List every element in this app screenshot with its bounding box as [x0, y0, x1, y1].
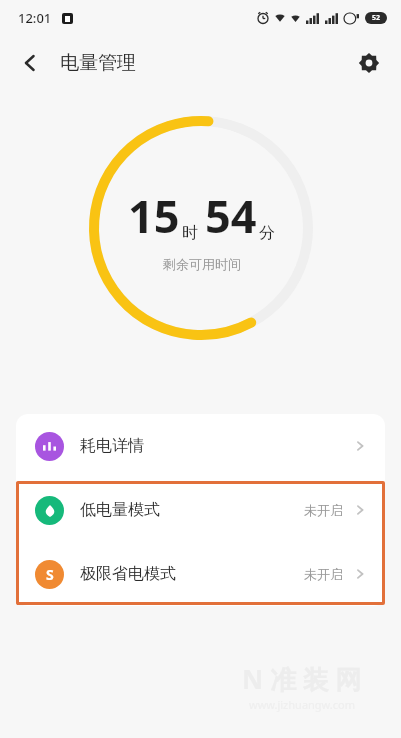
button[interactable]: Back [8, 41, 52, 85]
staticText: N 准 装 网 [242, 661, 362, 697]
staticText: 电量管理 [60, 51, 136, 75]
button[interactable]: Settings [347, 41, 391, 85]
staticText: 15 [128, 185, 180, 246]
staticText: 分 [259, 223, 275, 243]
staticText: 耗电详情 [80, 436, 144, 456]
staticText: 12:01 [18, 9, 52, 27]
staticText: 54 [205, 185, 257, 246]
staticText: S [46, 565, 54, 584]
staticText: 低电量模式 [80, 500, 160, 520]
button[interactable]: S [16, 542, 385, 606]
staticText: 未开启 [304, 566, 343, 582]
staticText: 未开启 [304, 502, 343, 518]
button[interactable]: 低电量模式 [16, 478, 385, 542]
staticText: 时 [182, 223, 198, 243]
staticText: 52 [372, 13, 381, 23]
staticText: 极限省电模式 [80, 564, 176, 584]
button[interactable]: 耗电详情 [16, 414, 385, 478]
staticText: 剩余可用时间 [163, 256, 241, 272]
